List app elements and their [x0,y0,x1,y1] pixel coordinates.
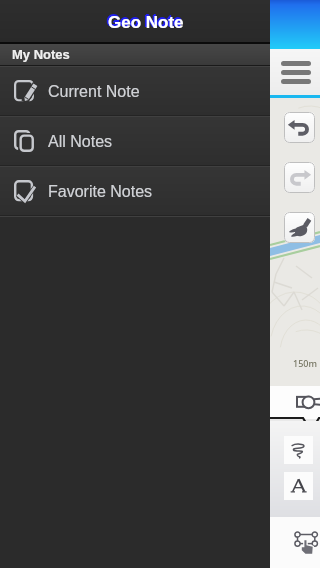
button[interactable]: Photo [296,394,320,410]
button[interactable]: Menu [281,61,311,85]
button[interactable]: Erase [284,212,315,243]
button[interactable]: Current Note [0,67,270,115]
button[interactable]: All Notes [0,117,270,165]
button[interactable]: Redo [284,162,315,193]
button[interactable]: Undo [284,112,315,143]
staticText: Geo Note [107,11,183,30]
staticText: Favorite Notes [48,183,153,201]
staticText: All Notes [48,133,113,151]
staticText: Current Note [48,83,140,101]
staticText: 150m [293,357,317,369]
button[interactable]: Text [284,472,313,500]
staticText: Geo Note [107,12,183,31]
button[interactable]: Transform [294,528,320,554]
staticText: Geo Note [106,12,182,31]
staticText: My Notes [12,47,70,62]
staticText: Geo Note [108,13,184,32]
button[interactable]: Favorite Notes [0,167,270,215]
button[interactable]: Freehand [284,436,313,464]
